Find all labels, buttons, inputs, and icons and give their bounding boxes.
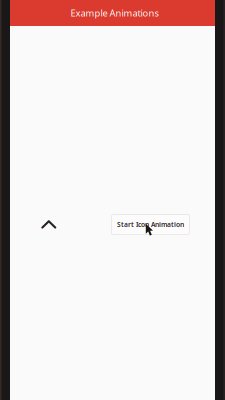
button[interactable]: Start Icon Animation: [111, 214, 190, 235]
button[interactable]: Animated chevron icon: [41, 220, 56, 229]
staticText: Start Icon Animation: [117, 220, 184, 229]
staticText: Example Animations: [70, 7, 158, 19]
